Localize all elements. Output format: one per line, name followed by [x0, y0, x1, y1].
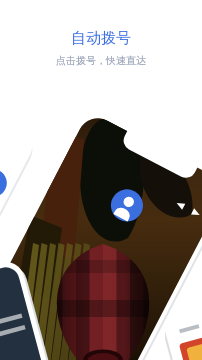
staticText: 自动拨号 [71, 29, 131, 48]
staticText: 点击拨号，快速直达 [56, 54, 146, 67]
